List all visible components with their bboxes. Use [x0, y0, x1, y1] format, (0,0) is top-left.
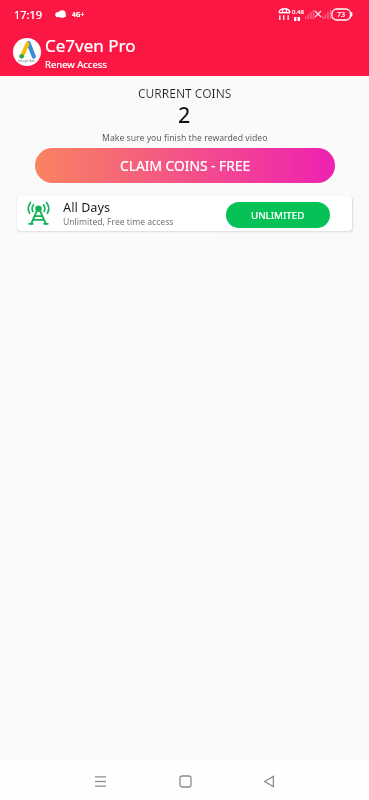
button[interactable]: UNLIMITED	[226, 202, 330, 228]
staticText: All Days	[63, 199, 111, 216]
staticText: 4G+	[72, 10, 85, 19]
button[interactable]: Home	[163, 761, 207, 800]
button[interactable]: Back	[247, 761, 291, 800]
staticText: Renew Access	[45, 58, 107, 71]
button[interactable]: CLAIM COINS - FREE	[35, 148, 335, 183]
staticText: Ce7ven Pro	[45, 34, 136, 57]
staticText: 2	[178, 100, 191, 129]
button[interactable]: Recents	[78, 761, 122, 800]
staticText: CURRENT COINS	[138, 85, 232, 101]
other: Antenna	[28, 202, 49, 225]
staticText: Google Ads	[18, 59, 36, 63]
staticText: CLAIM COINS - FREE	[120, 156, 251, 175]
staticText: UNLIMITED	[251, 209, 305, 222]
staticText: Unlimited, Free time access	[63, 216, 174, 228]
staticText: 0.48	[292, 8, 304, 16]
button[interactable]: Antenna	[17, 196, 352, 231]
staticText: 73	[337, 10, 346, 20]
staticText: Make sure you finish the rewarded video	[102, 132, 268, 144]
staticText: 17:19	[14, 7, 43, 22]
